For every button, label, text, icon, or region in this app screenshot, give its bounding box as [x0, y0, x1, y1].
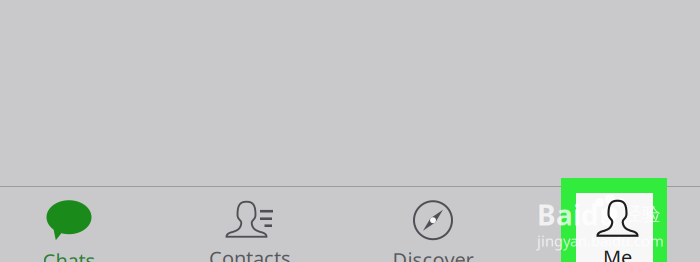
button[interactable]: Chats	[0, 199, 157, 262]
staticText: Chats	[42, 247, 95, 262]
button[interactable]: Contacts	[162, 198, 338, 262]
staticText: 经验	[623, 203, 661, 226]
staticText: jingyan.baidu.com	[537, 231, 664, 250]
staticText: Me	[603, 244, 632, 262]
button[interactable]: Discover	[345, 199, 521, 262]
button[interactable]: Me	[565, 197, 670, 262]
staticText: Baidu	[537, 196, 617, 233]
staticText: Discover	[392, 246, 473, 262]
staticText: Contacts	[209, 245, 291, 262]
